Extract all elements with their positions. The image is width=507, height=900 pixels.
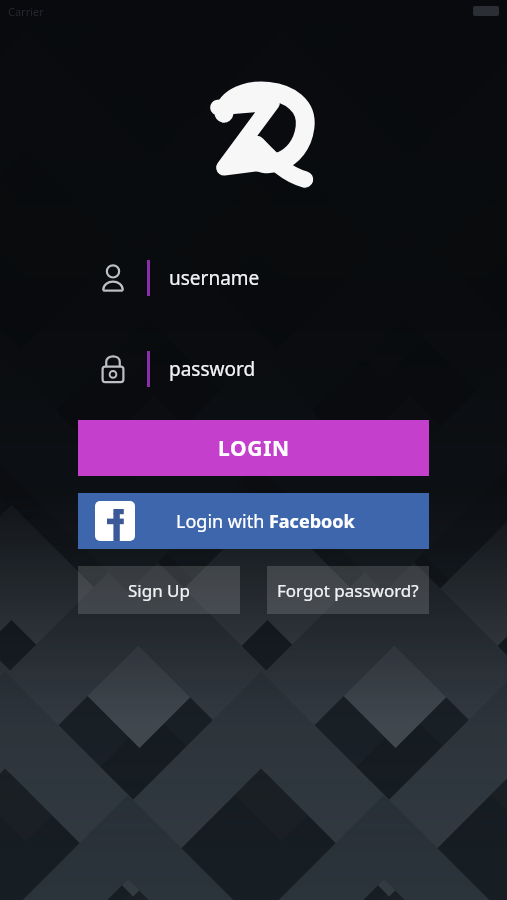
button[interactable]: LOGIN — [78, 420, 429, 476]
button[interactable]: password — [78, 347, 429, 391]
staticText: LOGIN — [218, 434, 290, 463]
staticText: Carrier — [8, 4, 44, 19]
staticText: Sign Up — [128, 579, 190, 602]
button[interactable]: Sign Up — [78, 566, 240, 614]
staticText: password — [169, 356, 256, 382]
staticText: Login with Facebook — [176, 509, 355, 534]
button[interactable]: username — [78, 256, 429, 300]
other: username — [78, 256, 147, 300]
staticText: username — [169, 265, 260, 291]
other: password — [78, 347, 147, 391]
button[interactable]: Forgot password? — [267, 566, 429, 614]
staticText: Forgot password? — [277, 579, 419, 602]
button[interactable]: Login with Facebook — [78, 493, 429, 549]
